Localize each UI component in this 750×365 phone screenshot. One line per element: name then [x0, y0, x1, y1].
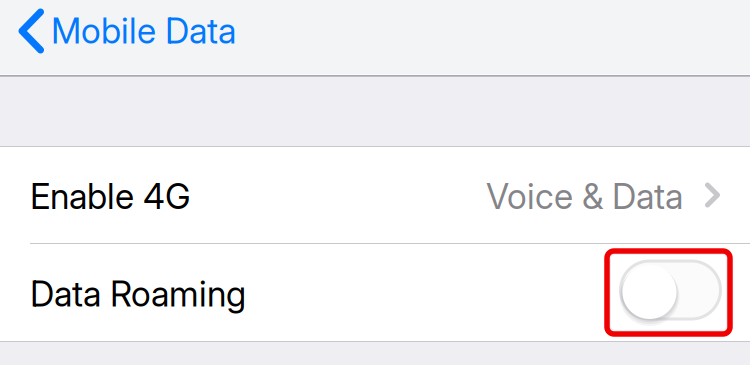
- staticText: Voice & Data: [486, 175, 683, 217]
- staticText: Data Roaming: [30, 273, 246, 315]
- staticText: Mobile Data: [51, 10, 236, 52]
- staticText: Enable 4G: [30, 175, 191, 217]
- button[interactable]: Data Roaming: [618, 261, 721, 323]
- button[interactable]: Mobile Data: [0, 0, 236, 54]
- button[interactable]: Enable 4G: [0, 147, 750, 243]
